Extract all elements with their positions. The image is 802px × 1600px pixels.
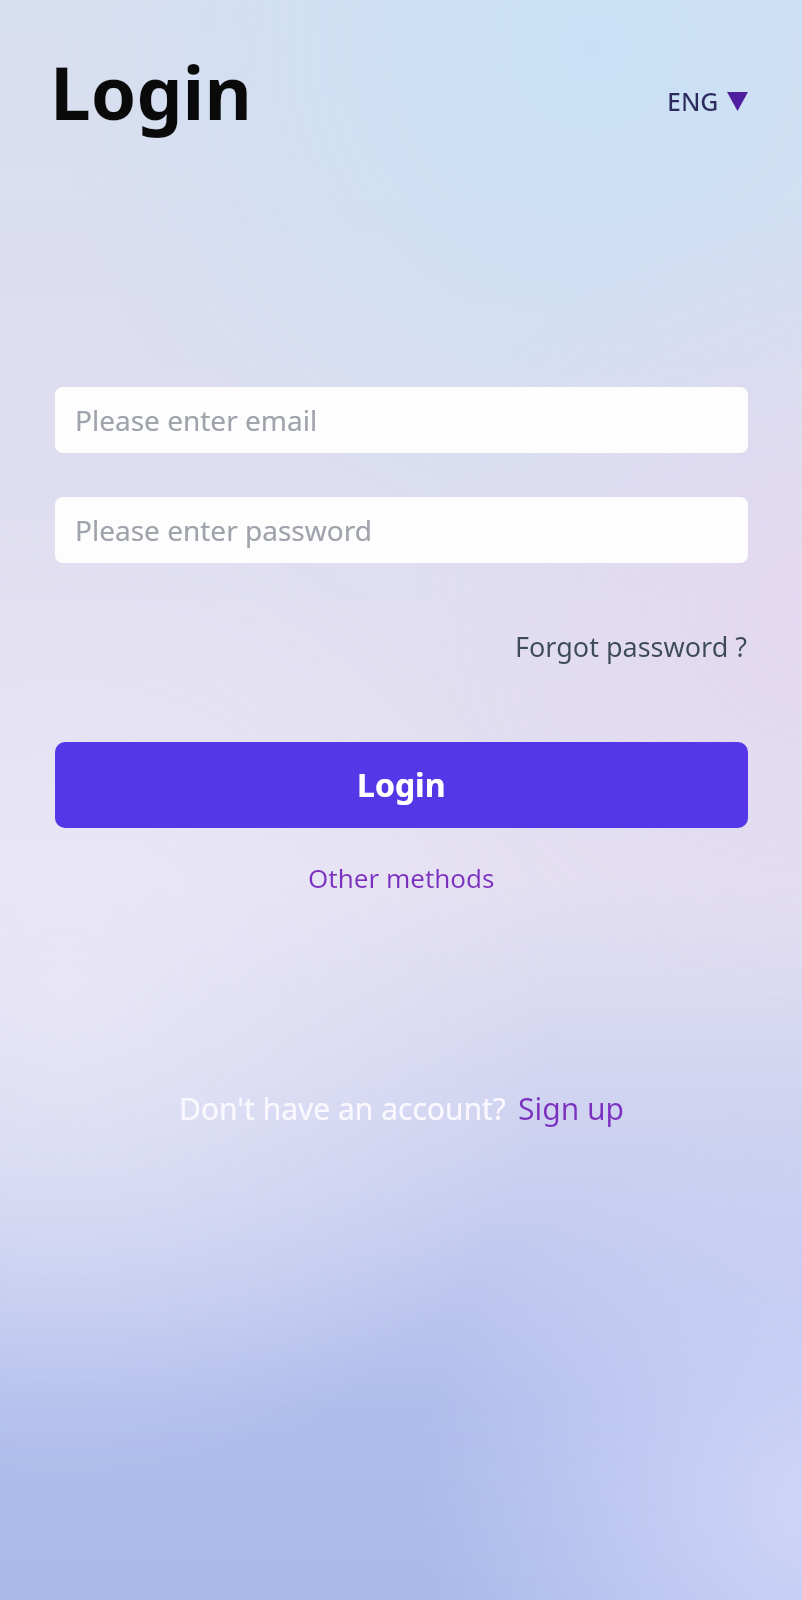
staticText: Please enter password: [75, 511, 372, 549]
staticText: Login: [50, 42, 252, 141]
staticText: Sign up: [518, 1088, 624, 1129]
button[interactable]: Please enter email: [55, 387, 748, 453]
staticText: Please enter email: [75, 401, 318, 439]
button[interactable]: Please enter password: [55, 497, 748, 563]
button[interactable]: Other methods: [308, 860, 495, 895]
button[interactable]: Don't have an account?: [179, 1088, 624, 1129]
button[interactable]: Login: [55, 742, 748, 828]
staticText: Forgot password ?: [515, 628, 748, 665]
staticText: Login: [357, 763, 446, 807]
staticText: Other methods: [308, 860, 495, 895]
staticText: Don't have an account?: [179, 1088, 506, 1129]
staticText: ENG: [667, 84, 719, 118]
button[interactable]: ENG: [667, 84, 748, 118]
button[interactable]: Forgot password ?: [515, 628, 748, 665]
